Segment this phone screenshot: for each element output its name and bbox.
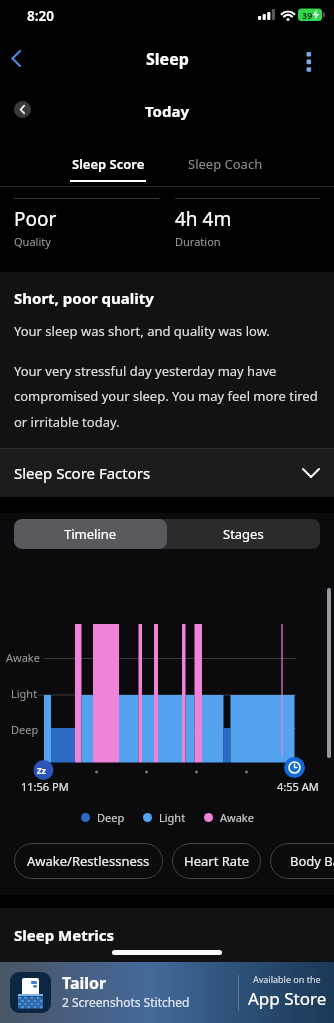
staticText: Sleep Score	[72, 155, 145, 173]
staticText: Sleep	[146, 48, 189, 70]
staticText: Poor	[14, 206, 57, 232]
staticText: Today	[145, 101, 190, 121]
button[interactable]: Heart Rate	[172, 843, 261, 879]
staticText: 4h 4m	[175, 206, 232, 232]
staticText: Sleep Metrics	[14, 925, 115, 945]
staticText: Quality	[14, 234, 51, 249]
button[interactable]: Body Ba	[270, 843, 334, 879]
staticText: Awake	[220, 810, 254, 825]
staticText: Body Ba	[290, 852, 334, 870]
staticText: 8:20	[27, 7, 54, 25]
staticText: Your very stressful day yesterday may ha…	[14, 362, 318, 431]
button[interactable]: Sleep Score Factors	[0, 449, 334, 497]
staticText: Duration	[175, 234, 221, 249]
staticText: Timeline	[64, 525, 117, 543]
button[interactable]	[4, 44, 34, 74]
staticText: Stages	[223, 525, 264, 543]
staticText: 39	[302, 9, 313, 21]
staticText: Awake	[6, 650, 40, 665]
button[interactable]: Awake/Restlessness	[14, 843, 163, 879]
staticText: Tailor	[62, 972, 107, 994]
button[interactable]: Sleep Coach	[167, 150, 284, 178]
staticText: Awake/Restlessness	[27, 852, 150, 870]
staticText: Short, poor quality	[14, 288, 154, 308]
staticText: Zz	[37, 765, 46, 776]
button[interactable]	[296, 48, 322, 78]
staticText: Light	[11, 686, 38, 701]
staticText: Deep	[97, 810, 125, 825]
staticText: Heart Rate	[184, 852, 250, 870]
button[interactable]: Stages	[167, 519, 320, 549]
button[interactable]	[14, 101, 31, 118]
staticText: Available on the	[253, 973, 321, 985]
staticText: Your sleep was short, and quality was lo…	[14, 322, 270, 340]
staticText: 2 Screenshots Stitched	[62, 994, 190, 1010]
staticText: 11:56 PM	[21, 779, 69, 794]
staticText: App Store	[248, 987, 327, 1010]
staticText: Deep	[11, 722, 39, 737]
staticText: Sleep Coach	[188, 155, 263, 173]
staticText: Light	[159, 810, 186, 825]
button[interactable]: Timeline	[14, 519, 167, 549]
button[interactable]: Sleep Score	[50, 150, 167, 178]
staticText: Sleep Score Factors	[14, 463, 151, 483]
staticText: 4:55 AM	[277, 779, 319, 794]
